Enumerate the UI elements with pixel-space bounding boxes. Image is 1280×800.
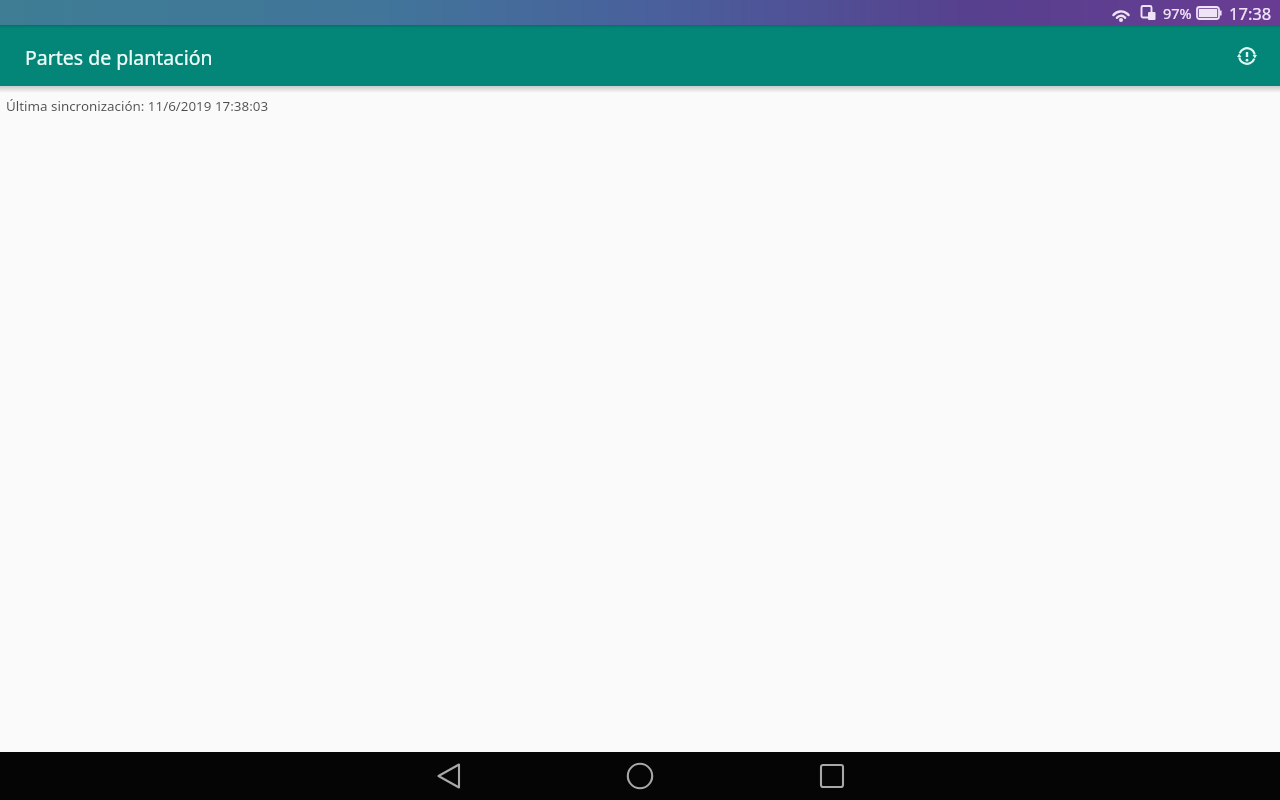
staticText: Partes de plantación <box>25 44 213 71</box>
staticText: Última sincronización: 11/6/2019 17:38:0… <box>6 97 269 115</box>
button[interactable] <box>352 752 544 800</box>
button[interactable] <box>544 752 736 800</box>
staticText: 17:38 <box>1229 2 1272 24</box>
staticText: 97% <box>1163 3 1192 23</box>
button[interactable] <box>736 752 928 800</box>
button[interactable] <box>1223 32 1271 80</box>
